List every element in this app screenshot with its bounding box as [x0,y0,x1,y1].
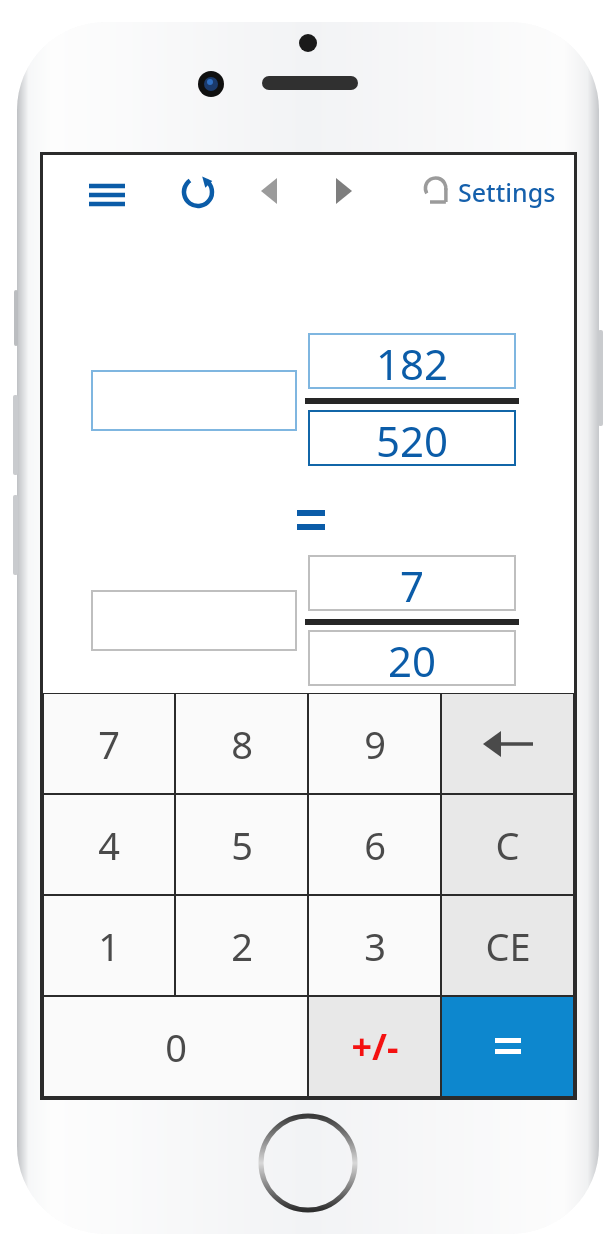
button[interactable]: Refresh [170,163,226,219]
button[interactable]: 0 [44,997,307,1096]
button[interactable]: Previous [241,163,297,219]
staticText: 1 [98,920,120,972]
button[interactable]: 7 [310,557,514,609]
button[interactable]: 520 [310,412,514,464]
button[interactable]: 7 [44,694,174,793]
staticText: 3 [364,920,386,972]
staticText: 4 [98,819,120,871]
button[interactable]: 6 [309,795,440,894]
staticText: +/- [351,1022,399,1071]
staticText: Settings [458,175,556,209]
staticText: C [495,819,520,871]
button[interactable]: 1 [44,896,174,995]
staticText: 520 [376,412,449,464]
button[interactable]: Menu [79,167,135,223]
staticText: 182 [376,335,449,387]
button[interactable]: 9 [309,694,440,793]
button[interactable]: +/- [309,997,440,1096]
staticText: 0 [165,1021,187,1073]
staticText: CE [485,920,531,972]
button[interactable]: 3 [309,896,440,995]
button[interactable]: Backspace [442,694,573,793]
button[interactable]: 5 [176,795,307,894]
staticText: 2 [231,920,253,972]
button[interactable]: C [442,795,573,894]
button[interactable]: Settings [458,175,556,209]
staticText: 7 [98,718,120,770]
button[interactable]: 8 [176,694,307,793]
button[interactable]: 4 [44,795,174,894]
button[interactable]: Next [316,163,372,219]
staticText: 7 [400,557,425,609]
staticText: 9 [364,718,386,770]
button[interactable]: CE [442,896,573,995]
button[interactable]: Equals [442,997,573,1096]
staticText: 20 [388,632,437,684]
button[interactable]: 20 [310,632,514,684]
staticText: 6 [364,819,386,871]
button[interactable]: 2 [176,896,307,995]
button[interactable]: 182 [310,335,514,387]
staticText: 8 [231,718,253,770]
button[interactable]: Undo [407,163,463,219]
staticText: 5 [231,819,253,871]
